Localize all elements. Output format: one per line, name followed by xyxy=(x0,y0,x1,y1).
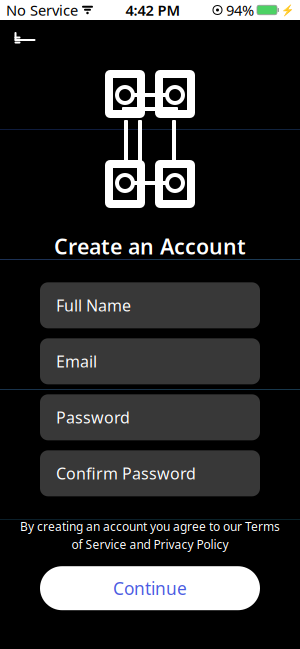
staticText: Password xyxy=(56,407,130,428)
staticText: 4:42 PM xyxy=(125,0,180,20)
button[interactable]: Password xyxy=(40,394,260,440)
button[interactable]: Full Name xyxy=(40,282,260,328)
button[interactable]: Email xyxy=(40,338,260,384)
staticText: Email xyxy=(56,351,97,372)
button[interactable]: Continue xyxy=(40,566,260,610)
staticText: Create an Account xyxy=(54,232,246,260)
staticText: 94% xyxy=(226,0,254,20)
button[interactable]: Back xyxy=(8,23,42,57)
staticText: Confirm Password xyxy=(56,463,196,484)
staticText: Continue xyxy=(113,577,187,600)
staticText: No Service xyxy=(6,0,78,20)
staticText: Full Name xyxy=(56,295,131,316)
staticText: ⚡ xyxy=(281,4,294,16)
staticText: of Service and Privacy Policy xyxy=(71,536,228,552)
button[interactable]: Confirm Password xyxy=(40,450,260,496)
staticText: By creating an account you agree to our … xyxy=(20,518,280,534)
